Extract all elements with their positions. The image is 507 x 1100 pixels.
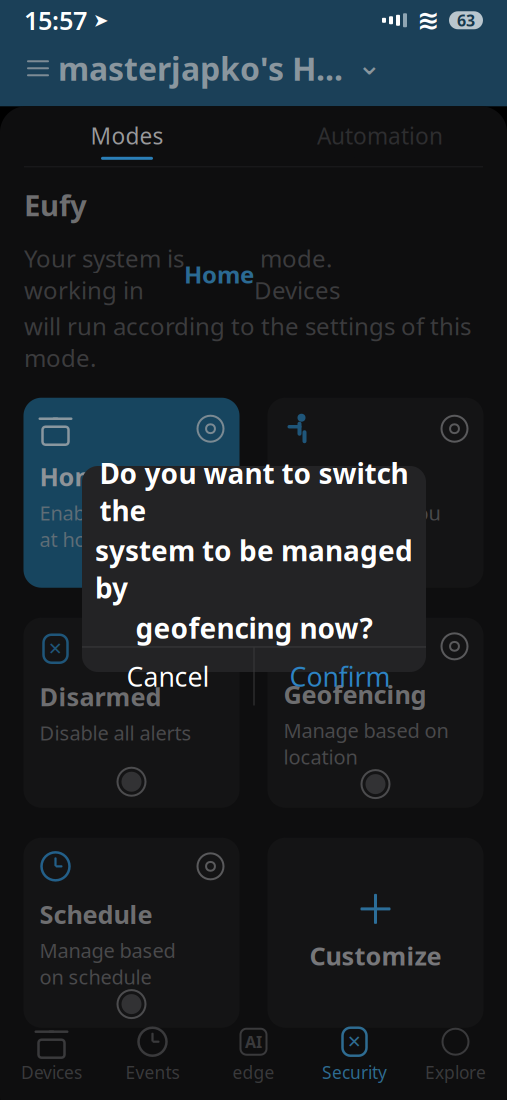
staticText: will run according to the settings of th…: [24, 310, 471, 374]
staticText: Manage based on schedule: [39, 937, 175, 990]
button[interactable]: ✕: [304, 1028, 405, 1084]
staticText: mode. Devices: [254, 242, 340, 306]
staticText: Geofencing: [283, 677, 426, 711]
staticText: Enable when you're at home: [39, 499, 219, 552]
button[interactable]: Home: [23, 398, 239, 588]
button[interactable]: Events: [102, 1028, 203, 1084]
staticText: Events: [125, 1061, 179, 1084]
staticText: Eufy: [24, 185, 87, 224]
staticText: Devices: [21, 1061, 82, 1084]
staticText: 63: [457, 10, 475, 31]
button[interactable]: masterjapko's H...: [58, 47, 382, 89]
staticText: ✕: [347, 1032, 362, 1052]
staticText: Customize: [309, 939, 441, 972]
staticText: Security: [322, 1061, 387, 1084]
staticText: Home: [39, 460, 114, 493]
staticText: AI: [245, 1031, 262, 1052]
staticText: Your system is working in: [24, 242, 184, 306]
staticText: Schedule: [39, 897, 152, 931]
staticText: Explore: [425, 1061, 486, 1084]
staticText: masterjapko's H...: [58, 47, 343, 89]
button[interactable]: Modes: [0, 114, 253, 166]
staticText: Home: [184, 258, 254, 290]
staticText: Away: [283, 460, 352, 493]
button[interactable]: Devices: [1, 1028, 102, 1084]
staticText: Automation: [317, 121, 443, 151]
staticText: 15:57: [24, 3, 87, 37]
staticText: geofencing now?: [135, 609, 372, 646]
staticText: edge: [232, 1061, 274, 1084]
staticText: Disarmed: [39, 680, 161, 713]
button[interactable]: Menu: [18, 48, 58, 88]
button[interactable]: Customize: [267, 838, 483, 1028]
button[interactable]: Away: [267, 398, 483, 588]
button[interactable]: Schedule: [23, 838, 239, 1028]
staticText: system to be managed by: [95, 532, 413, 606]
staticText: ➤: [87, 10, 109, 31]
staticText: Enable when you leave home: [283, 499, 440, 579]
button[interactable]: Automation: [253, 114, 506, 166]
button[interactable]: AI: [203, 1028, 304, 1084]
staticText: ≋: [417, 5, 439, 35]
staticText: Confirm: [289, 659, 390, 694]
staticText: Modes: [90, 121, 163, 151]
button[interactable]: Confirm: [254, 647, 425, 705]
staticText: ⌄: [357, 48, 382, 81]
button[interactable]: Cancel: [82, 647, 253, 705]
staticText: ✕: [48, 639, 63, 659]
staticText: Do you want to switch the: [99, 454, 408, 529]
staticText: Cancel: [126, 659, 209, 694]
button[interactable]: Geofencing: [267, 618, 483, 808]
button[interactable]: ✕: [23, 618, 239, 808]
button[interactable]: Explore: [405, 1028, 506, 1084]
staticText: Manage based on location: [283, 717, 448, 770]
staticText: Disable all alerts: [39, 719, 191, 746]
